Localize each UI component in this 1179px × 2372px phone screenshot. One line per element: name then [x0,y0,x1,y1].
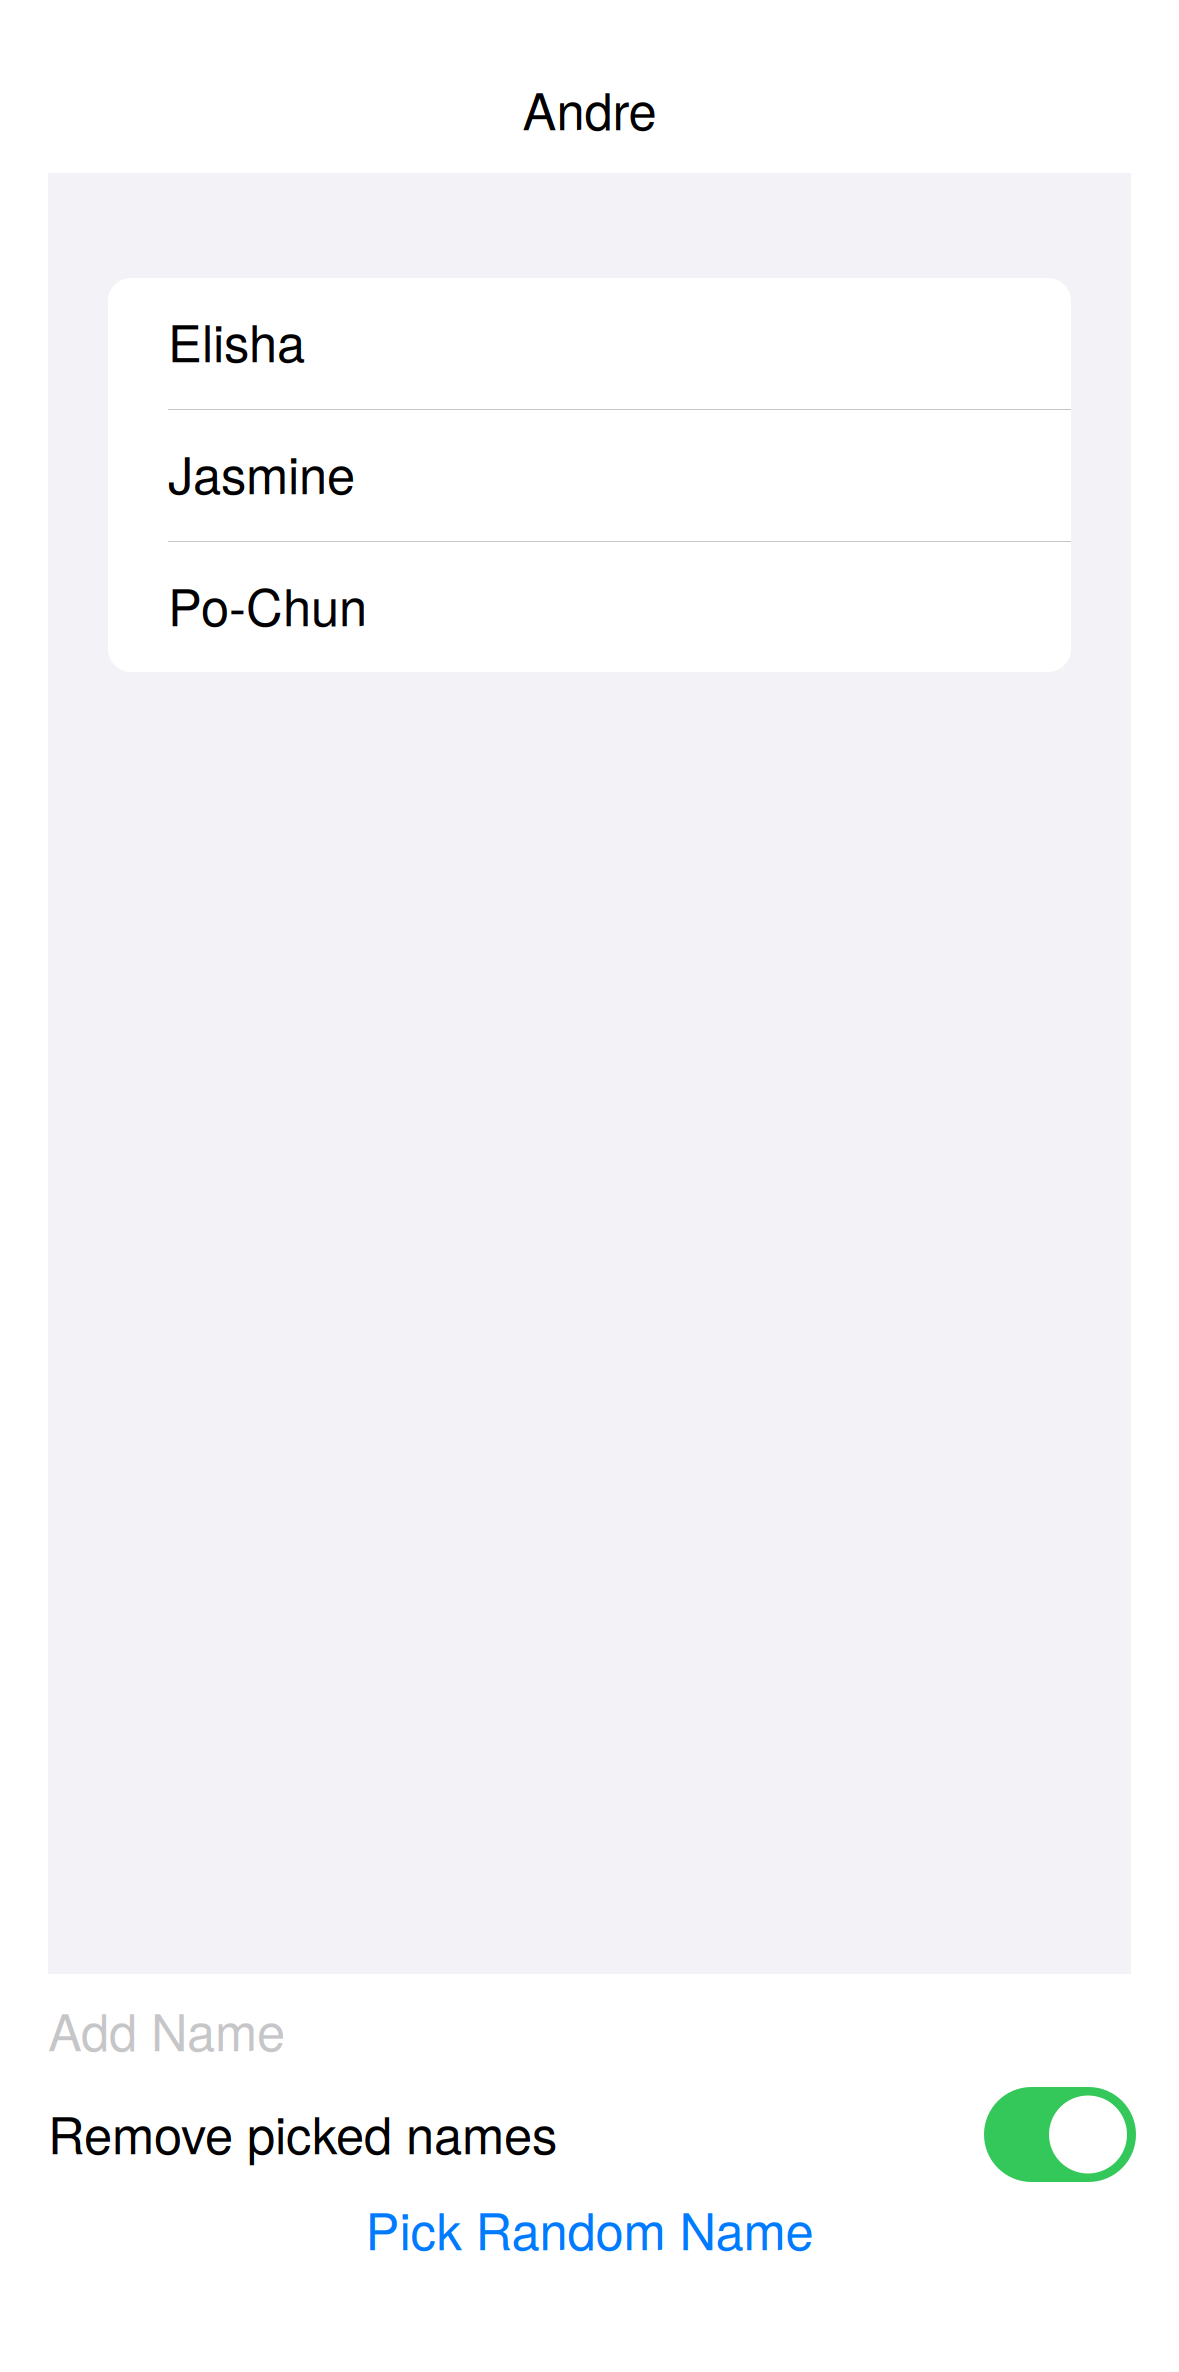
staticText: Andre [522,72,656,145]
staticText: Add Name [48,1993,285,2066]
button[interactable]: Pick Random Name [0,2192,1179,2265]
button[interactable]: Add Name [0,1974,1179,2066]
staticText: Pick Random Name [365,2192,813,2265]
button[interactable]: Remove picked names [0,2087,1179,2182]
staticText: Remove picked names [48,2096,557,2169]
button[interactable]: Elisha [108,278,1071,410]
staticText: Jasmine [168,436,355,509]
button[interactable]: Jasmine [108,410,1071,542]
button[interactable]: Po-Chun [108,542,1071,672]
staticText: Elisha [168,304,305,377]
staticText: Po-Chun [168,568,367,641]
